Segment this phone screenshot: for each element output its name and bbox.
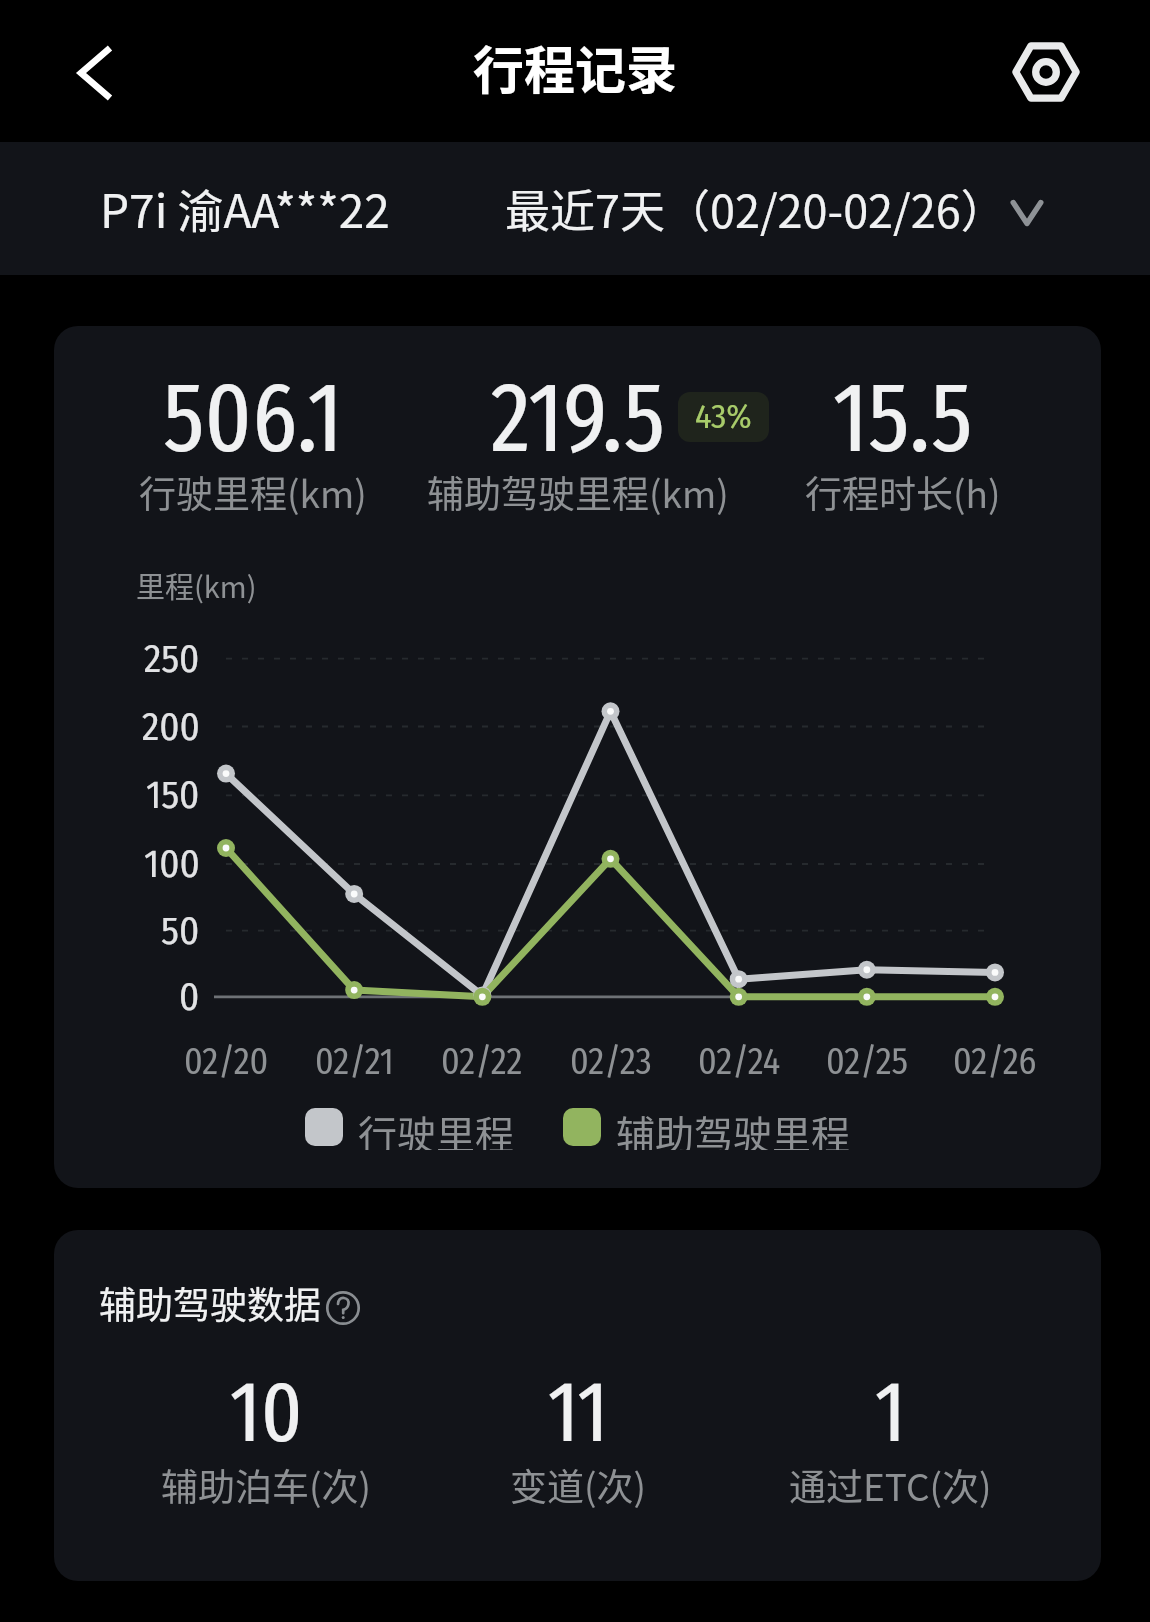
staticText: 02/26 [953,1040,1037,1083]
staticText: 辅助驾驶数据 [99,1276,321,1330]
staticText: 02/25 [826,1040,909,1083]
staticText: 1 [875,1361,906,1464]
button[interactable]: Back [46,25,142,121]
staticText: 219.5 [491,359,665,477]
staticText: 通过ETC(次) [789,1458,992,1512]
staticText: 辅助泊车(次) [161,1458,372,1512]
staticText: 02/21 [315,1040,394,1083]
button[interactable]: Settings [998,24,1094,120]
staticText: 43% [695,396,752,437]
staticText: 02/22 [441,1040,523,1083]
staticText: 里程(km) [136,564,257,606]
staticText: 行程记录 [473,30,678,104]
button[interactable]: P7i 渝AA***22 [100,142,390,275]
staticText: 100 [144,841,200,888]
staticText: 行驶里程 [358,1104,515,1150]
staticText: 02/24 [698,1040,781,1083]
staticText: 50 [161,908,200,955]
staticText: 辅助驾驶里程 [616,1104,851,1150]
staticText: 506.1 [163,359,343,477]
staticText: P7i 渝AA***22 [100,175,390,242]
staticText: 250 [144,636,200,683]
button[interactable]: 最近7天（02/20-02/26） [505,142,1058,275]
staticText: 02/20 [184,1040,269,1083]
staticText: 200 [142,704,200,751]
staticText: 11 [548,1361,609,1464]
staticText: 150 [146,772,200,819]
staticText: 行驶里程(km) [139,465,367,519]
staticText: 最近7天（02/20-02/26） [505,176,1006,241]
staticText: 辅助驾驶里程(km) [427,465,729,519]
staticText: 10 [230,1361,303,1464]
staticText: 15.5 [833,359,973,477]
staticText: 行程时长(h) [805,465,1001,519]
staticText: 变道(次) [510,1458,647,1512]
staticText: 02/23 [570,1040,652,1083]
button[interactable]: Help about assisted-driving data [326,1291,360,1325]
staticText: 0 [179,974,200,1021]
